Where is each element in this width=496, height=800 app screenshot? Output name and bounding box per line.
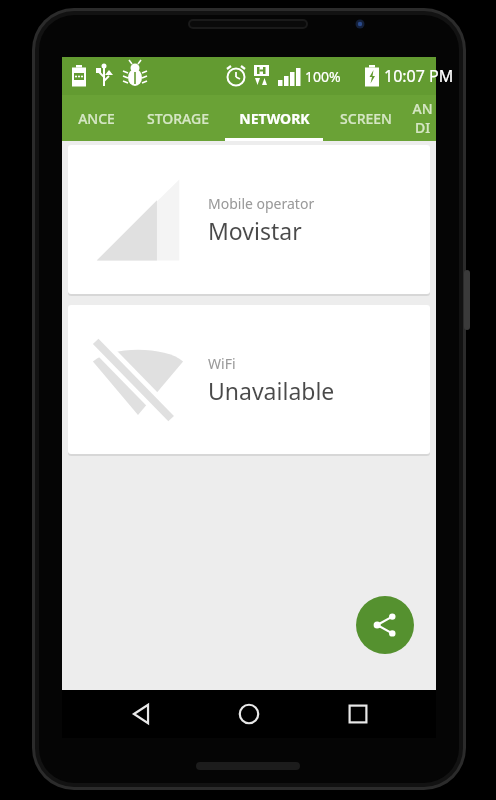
staticText: ANCE [78,109,115,128]
button[interactable]: Recent apps [328,690,388,738]
staticText: NETWORK [239,109,310,128]
button[interactable]: NETWORK [225,95,323,141]
staticText: SCREEN [340,109,392,128]
staticText: STORAGE [147,109,209,128]
button[interactable]: SCREEN [323,95,409,141]
button[interactable]: Share [356,596,414,654]
button[interactable]: Mobile operator [68,145,430,294]
staticText: Unavailable [208,375,335,406]
button[interactable]: ANDI [409,95,436,141]
button[interactable]: WiFi [68,305,430,454]
button[interactable]: STORAGE [130,95,225,141]
staticText: Mobile operator [208,194,315,213]
staticText: 10:07 PM [384,65,454,87]
staticText: 100% [305,67,341,86]
button[interactable]: Home [219,690,279,738]
staticText: WiFi [208,354,236,373]
staticText: ANDI [409,99,436,137]
button[interactable]: ANCE [62,95,130,141]
staticText: Movistar [208,215,302,246]
button[interactable]: Back [111,690,171,738]
